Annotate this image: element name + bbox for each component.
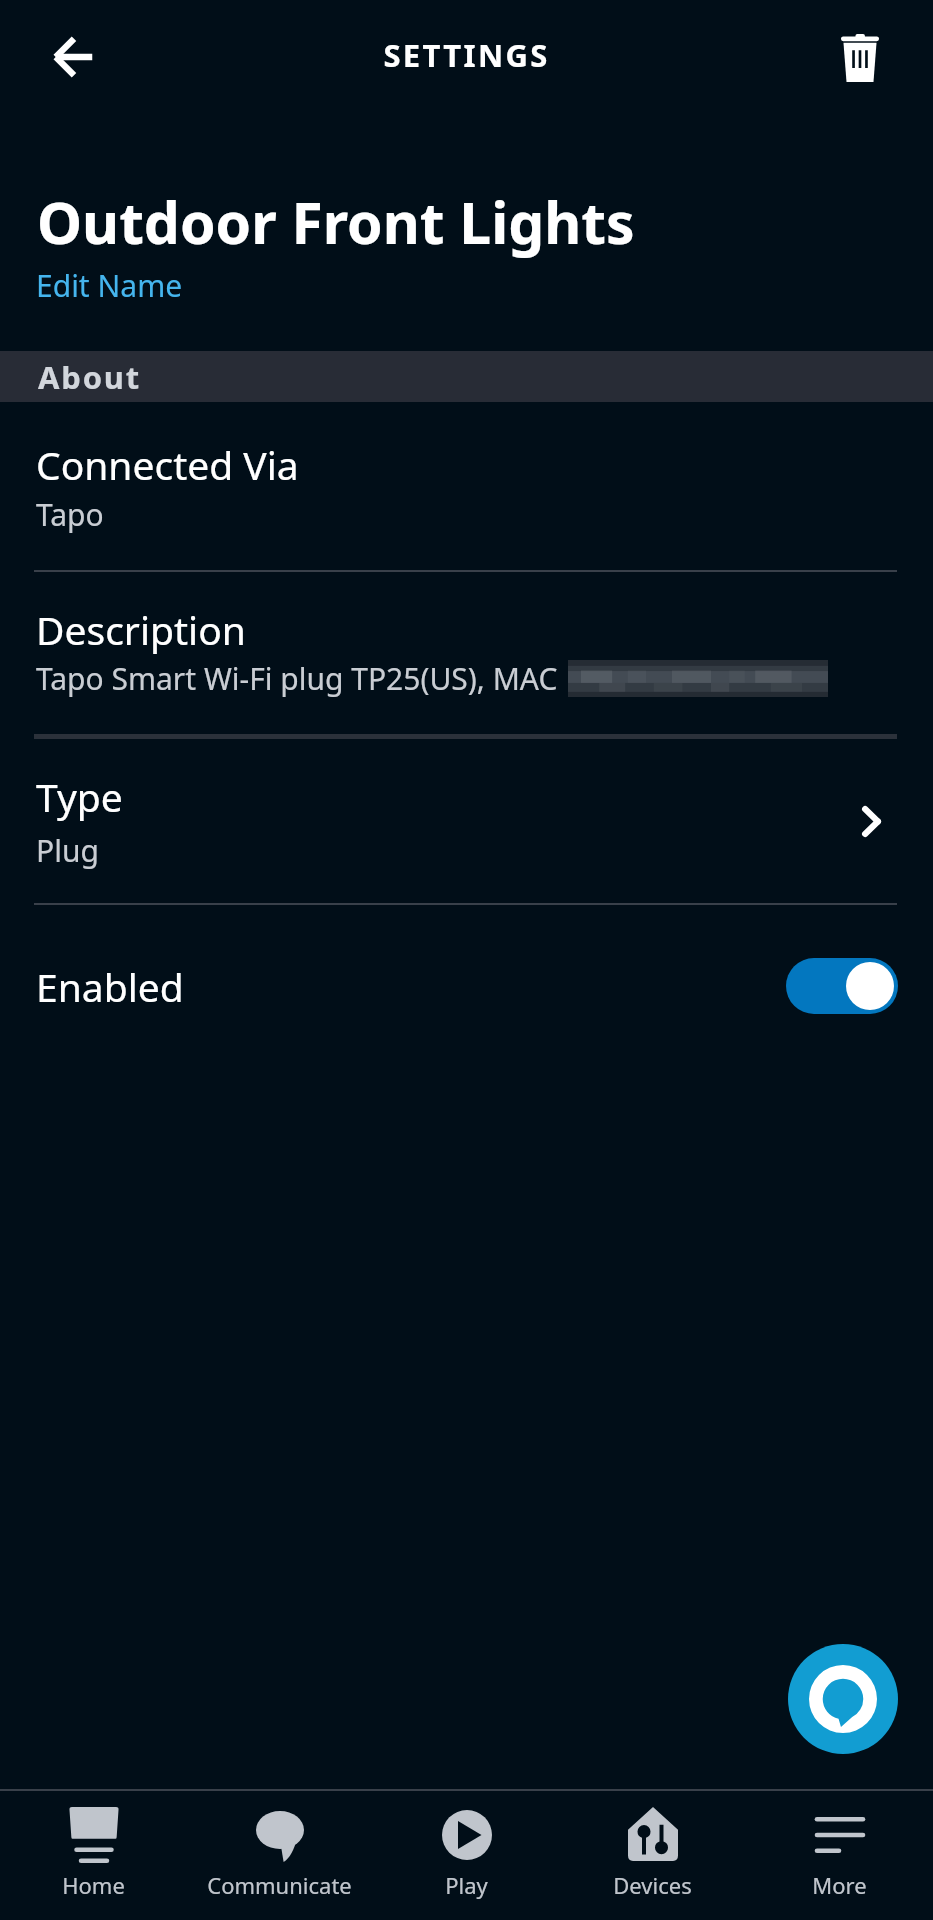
staticText: Enabled (36, 960, 184, 1013)
button[interactable]: Edit Name (36, 265, 183, 306)
button[interactable]: More (746, 1791, 933, 1920)
button[interactable]: Delete device (822, 20, 898, 96)
staticText: Home (0, 1870, 187, 1900)
staticText: SETTINGS (0, 34, 933, 76)
button[interactable]: Type (0, 739, 933, 903)
staticText: About (38, 356, 142, 398)
staticText: Tapo Smart Wi-Fi plug TP25(US), MAC (36, 658, 558, 699)
button[interactable]: Alexa (788, 1644, 898, 1754)
button[interactable]: Connected Via (0, 402, 933, 570)
button[interactable]: Communicate (186, 1791, 373, 1920)
button[interactable]: Description (0, 572, 933, 737)
staticText: Connected Via (36, 438, 299, 491)
staticText: Outdoor Front Lights (37, 183, 635, 261)
staticText: Type (36, 770, 123, 823)
staticText: More (746, 1870, 933, 1900)
staticText: Plug (36, 830, 99, 871)
other: Open Type (862, 806, 881, 837)
staticText: Play (373, 1870, 560, 1900)
button[interactable]: Home (0, 1791, 187, 1920)
button[interactable]: Play (373, 1791, 560, 1920)
staticText: Tapo (36, 494, 104, 535)
staticText: Devices (559, 1870, 746, 1900)
button[interactable]: Enabled (786, 958, 898, 1014)
staticText: Description (36, 603, 246, 656)
button[interactable]: Back (36, 19, 112, 95)
staticText: Communicate (186, 1870, 373, 1900)
button[interactable]: Enabled (0, 905, 933, 1065)
staticText: Edit Name (36, 265, 183, 306)
button[interactable]: Devices (559, 1791, 746, 1920)
